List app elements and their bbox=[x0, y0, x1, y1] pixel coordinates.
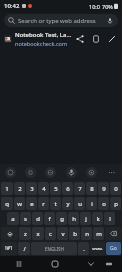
staticText: 8 bbox=[90, 185, 94, 193]
button[interactable]: Edit bbox=[106, 33, 118, 45]
staticText: v bbox=[61, 230, 65, 238]
staticText: b bbox=[73, 230, 77, 238]
staticText: 10:42 bbox=[4, 2, 20, 10]
button[interactable]: 5 bbox=[50, 182, 61, 195]
staticText: q bbox=[5, 200, 9, 208]
staticText: z bbox=[24, 230, 27, 238]
button[interactable]: Clipboard bbox=[25, 167, 36, 178]
button[interactable]: 2 bbox=[14, 182, 25, 195]
button[interactable]: Recents bbox=[12, 257, 26, 271]
staticText: 5 bbox=[54, 185, 58, 193]
staticText: p bbox=[114, 200, 118, 208]
button[interactable]: Tabs bbox=[90, 33, 102, 45]
staticText: 70% bbox=[102, 3, 113, 10]
staticText: t bbox=[54, 200, 57, 208]
button[interactable]: i bbox=[86, 197, 97, 210]
staticText: a bbox=[11, 215, 15, 223]
button[interactable]: 6 bbox=[62, 182, 73, 195]
button[interactable]: Back bbox=[84, 257, 98, 271]
button[interactable]: c bbox=[45, 227, 56, 240]
staticText: ENGLISH bbox=[45, 246, 64, 252]
button[interactable]: www. bbox=[90, 242, 105, 255]
staticText: c bbox=[49, 230, 52, 238]
button[interactable]: w bbox=[14, 197, 25, 210]
button[interactable]: Home bbox=[48, 257, 62, 271]
button[interactable]: 0 bbox=[110, 182, 121, 195]
staticText: g bbox=[60, 215, 64, 223]
staticText: l bbox=[109, 215, 111, 223]
button[interactable]: z bbox=[19, 227, 31, 240]
staticText: y bbox=[66, 200, 70, 208]
staticText: 6 bbox=[66, 185, 70, 193]
staticText: notebookcheck.com bbox=[15, 40, 68, 47]
button[interactable]: p bbox=[110, 197, 121, 210]
button[interactable]: Voice input bbox=[66, 167, 77, 178]
button[interactable]: Voice search bbox=[106, 17, 114, 25]
staticText: Go bbox=[110, 245, 117, 252]
button[interactable]: f bbox=[44, 212, 55, 225]
button[interactable]: e bbox=[26, 197, 37, 210]
button[interactable]: !#1 bbox=[1, 242, 17, 255]
staticText: 3 bbox=[30, 185, 34, 193]
button[interactable]: s bbox=[20, 212, 31, 225]
staticText: f bbox=[48, 215, 51, 223]
button[interactable]: d bbox=[32, 212, 43, 225]
staticText: . bbox=[83, 245, 85, 253]
staticText: 4 bbox=[42, 185, 46, 193]
button[interactable]: b bbox=[69, 227, 80, 240]
button[interactable]: / bbox=[18, 242, 30, 255]
button[interactable]: j bbox=[80, 212, 91, 225]
button[interactable]: Translate bbox=[45, 167, 56, 178]
staticText: k bbox=[96, 215, 100, 223]
button[interactable]: Go bbox=[106, 242, 121, 255]
staticText: 9 bbox=[102, 185, 106, 193]
button[interactable]: h bbox=[68, 212, 79, 225]
button[interactable]: 4 bbox=[38, 182, 49, 195]
button[interactable]: Hide keyboard bbox=[102, 257, 116, 271]
button[interactable]: y bbox=[62, 197, 73, 210]
staticText: m bbox=[96, 230, 102, 238]
button[interactable]: Shift bbox=[1, 227, 18, 240]
staticText: 1 bbox=[5, 185, 9, 193]
button[interactable]: ENGLISH bbox=[31, 242, 77, 255]
staticText: w bbox=[17, 200, 22, 208]
button[interactable]: 7 bbox=[74, 182, 85, 195]
button[interactable]: v bbox=[57, 227, 68, 240]
button[interactable]: 1 bbox=[1, 182, 13, 195]
staticText: 10:0 bbox=[89, 3, 100, 10]
staticText: ⋯ bbox=[108, 169, 115, 177]
button[interactable]: Notebook Test, Lapt... bbox=[0, 29, 122, 48]
button[interactable]: r bbox=[38, 197, 49, 210]
staticText: Search or type web address bbox=[18, 17, 104, 25]
button[interactable]: m bbox=[93, 227, 104, 240]
button[interactable]: Share bbox=[74, 33, 86, 45]
staticText: / bbox=[23, 245, 26, 253]
button[interactable]: x bbox=[32, 227, 44, 240]
button[interactable]: o bbox=[98, 197, 109, 210]
button[interactable]: g bbox=[56, 212, 67, 225]
staticText: 7 bbox=[78, 185, 82, 193]
button[interactable]: Search or type web address bbox=[4, 14, 118, 27]
button[interactable]: k bbox=[92, 212, 103, 225]
button[interactable]: Backspace bbox=[105, 227, 121, 240]
button[interactable]: q bbox=[1, 197, 13, 210]
button[interactable]: a bbox=[7, 212, 19, 225]
button[interactable]: 9 bbox=[98, 182, 109, 195]
button[interactable]: l bbox=[104, 212, 115, 225]
staticText: 2 bbox=[18, 185, 22, 193]
button[interactable]: u bbox=[74, 197, 85, 210]
button[interactable]: Settings bbox=[86, 167, 97, 178]
button[interactable]: . bbox=[78, 242, 89, 255]
staticText: www. bbox=[92, 246, 103, 251]
button[interactable]: t bbox=[50, 197, 61, 210]
staticText: Notebook Test, Lapt... bbox=[15, 31, 72, 39]
button[interactable]: More options bbox=[106, 167, 117, 178]
button[interactable]: 8 bbox=[86, 182, 97, 195]
staticText: e bbox=[30, 200, 34, 208]
button[interactable]: n bbox=[81, 227, 92, 240]
staticText: x bbox=[36, 230, 40, 238]
button[interactable]: Emoji bbox=[5, 167, 16, 178]
staticText: d bbox=[36, 215, 40, 223]
staticText: h bbox=[72, 215, 76, 223]
button[interactable]: 3 bbox=[26, 182, 37, 195]
